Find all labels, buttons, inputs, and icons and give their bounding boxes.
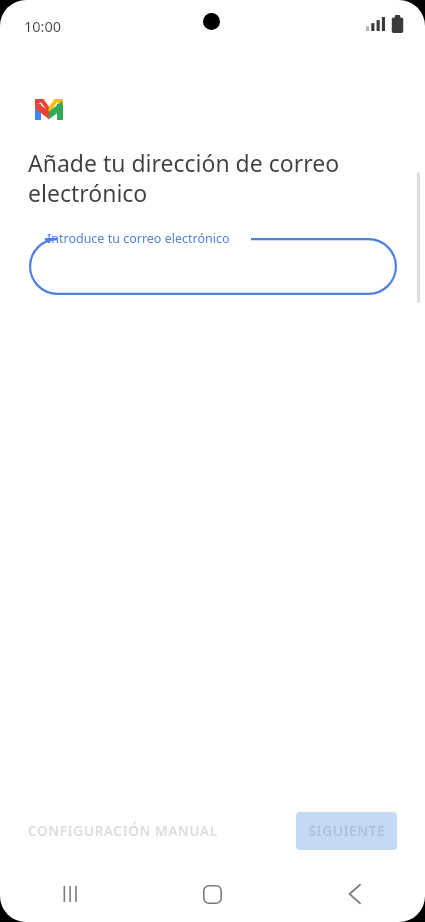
button[interactable]: CONFIGURACIÓN MANUAL bbox=[16, 814, 230, 848]
staticText: Añade tu dirección de correo electrónico bbox=[28, 147, 389, 209]
button[interactable]: Home bbox=[141, 866, 283, 922]
button[interactable]: SIGUIENTE bbox=[296, 812, 397, 850]
button[interactable]: Recent apps bbox=[0, 866, 141, 922]
staticText: SIGUIENTE bbox=[308, 822, 386, 840]
staticText: 10:00 bbox=[24, 16, 62, 36]
button[interactable]: Back bbox=[283, 866, 425, 922]
button[interactable]: Introduce tu correo electrónico bbox=[29, 230, 397, 295]
staticText: Introduce tu correo electrónico bbox=[47, 230, 230, 247]
staticText: CONFIGURACIÓN MANUAL bbox=[28, 822, 218, 840]
